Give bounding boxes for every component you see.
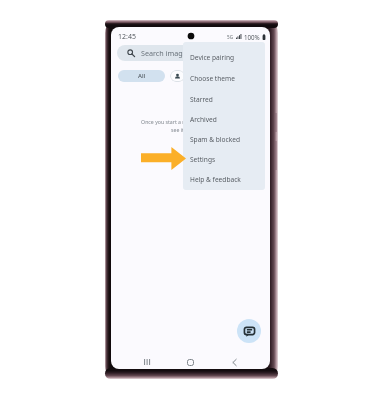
staticText: Help & feedback bbox=[190, 175, 241, 184]
button[interactable]: Spam & blocked bbox=[183, 129, 265, 149]
button[interactable]: Home bbox=[182, 355, 199, 369]
staticText: see it listed here bbox=[171, 126, 211, 133]
staticText: All bbox=[138, 72, 146, 80]
button[interactable]: Archived bbox=[183, 109, 265, 129]
staticText: Starred bbox=[190, 95, 213, 104]
button[interactable]: Back bbox=[226, 355, 243, 369]
button[interactable]: Starred bbox=[183, 89, 265, 109]
staticText: 5G bbox=[227, 34, 233, 40]
button[interactable]: Help & feedback bbox=[183, 169, 265, 189]
staticText: Device pairing bbox=[190, 53, 235, 62]
staticText: Choose theme bbox=[190, 74, 235, 83]
button[interactable]: All bbox=[118, 70, 165, 82]
staticText: 12:45 bbox=[118, 32, 136, 42]
button[interactable]: Search images bbox=[117, 45, 264, 61]
button[interactable]: Settings bbox=[183, 149, 265, 169]
button[interactable]: Start chat bbox=[237, 319, 261, 343]
staticText: Settings bbox=[190, 155, 216, 164]
button[interactable]: Device pairing bbox=[183, 47, 265, 68]
staticText: Spam & blocked bbox=[190, 135, 241, 144]
staticText: Search images bbox=[141, 48, 191, 58]
button[interactable]: Recents bbox=[138, 355, 155, 369]
button[interactable]: Contacts filter bbox=[170, 70, 185, 82]
staticText: Archived bbox=[190, 115, 217, 124]
staticText: Once you start a new conversation, you'l… bbox=[141, 118, 241, 125]
staticText: 100% bbox=[244, 33, 260, 41]
button[interactable]: Choose theme bbox=[183, 68, 265, 89]
